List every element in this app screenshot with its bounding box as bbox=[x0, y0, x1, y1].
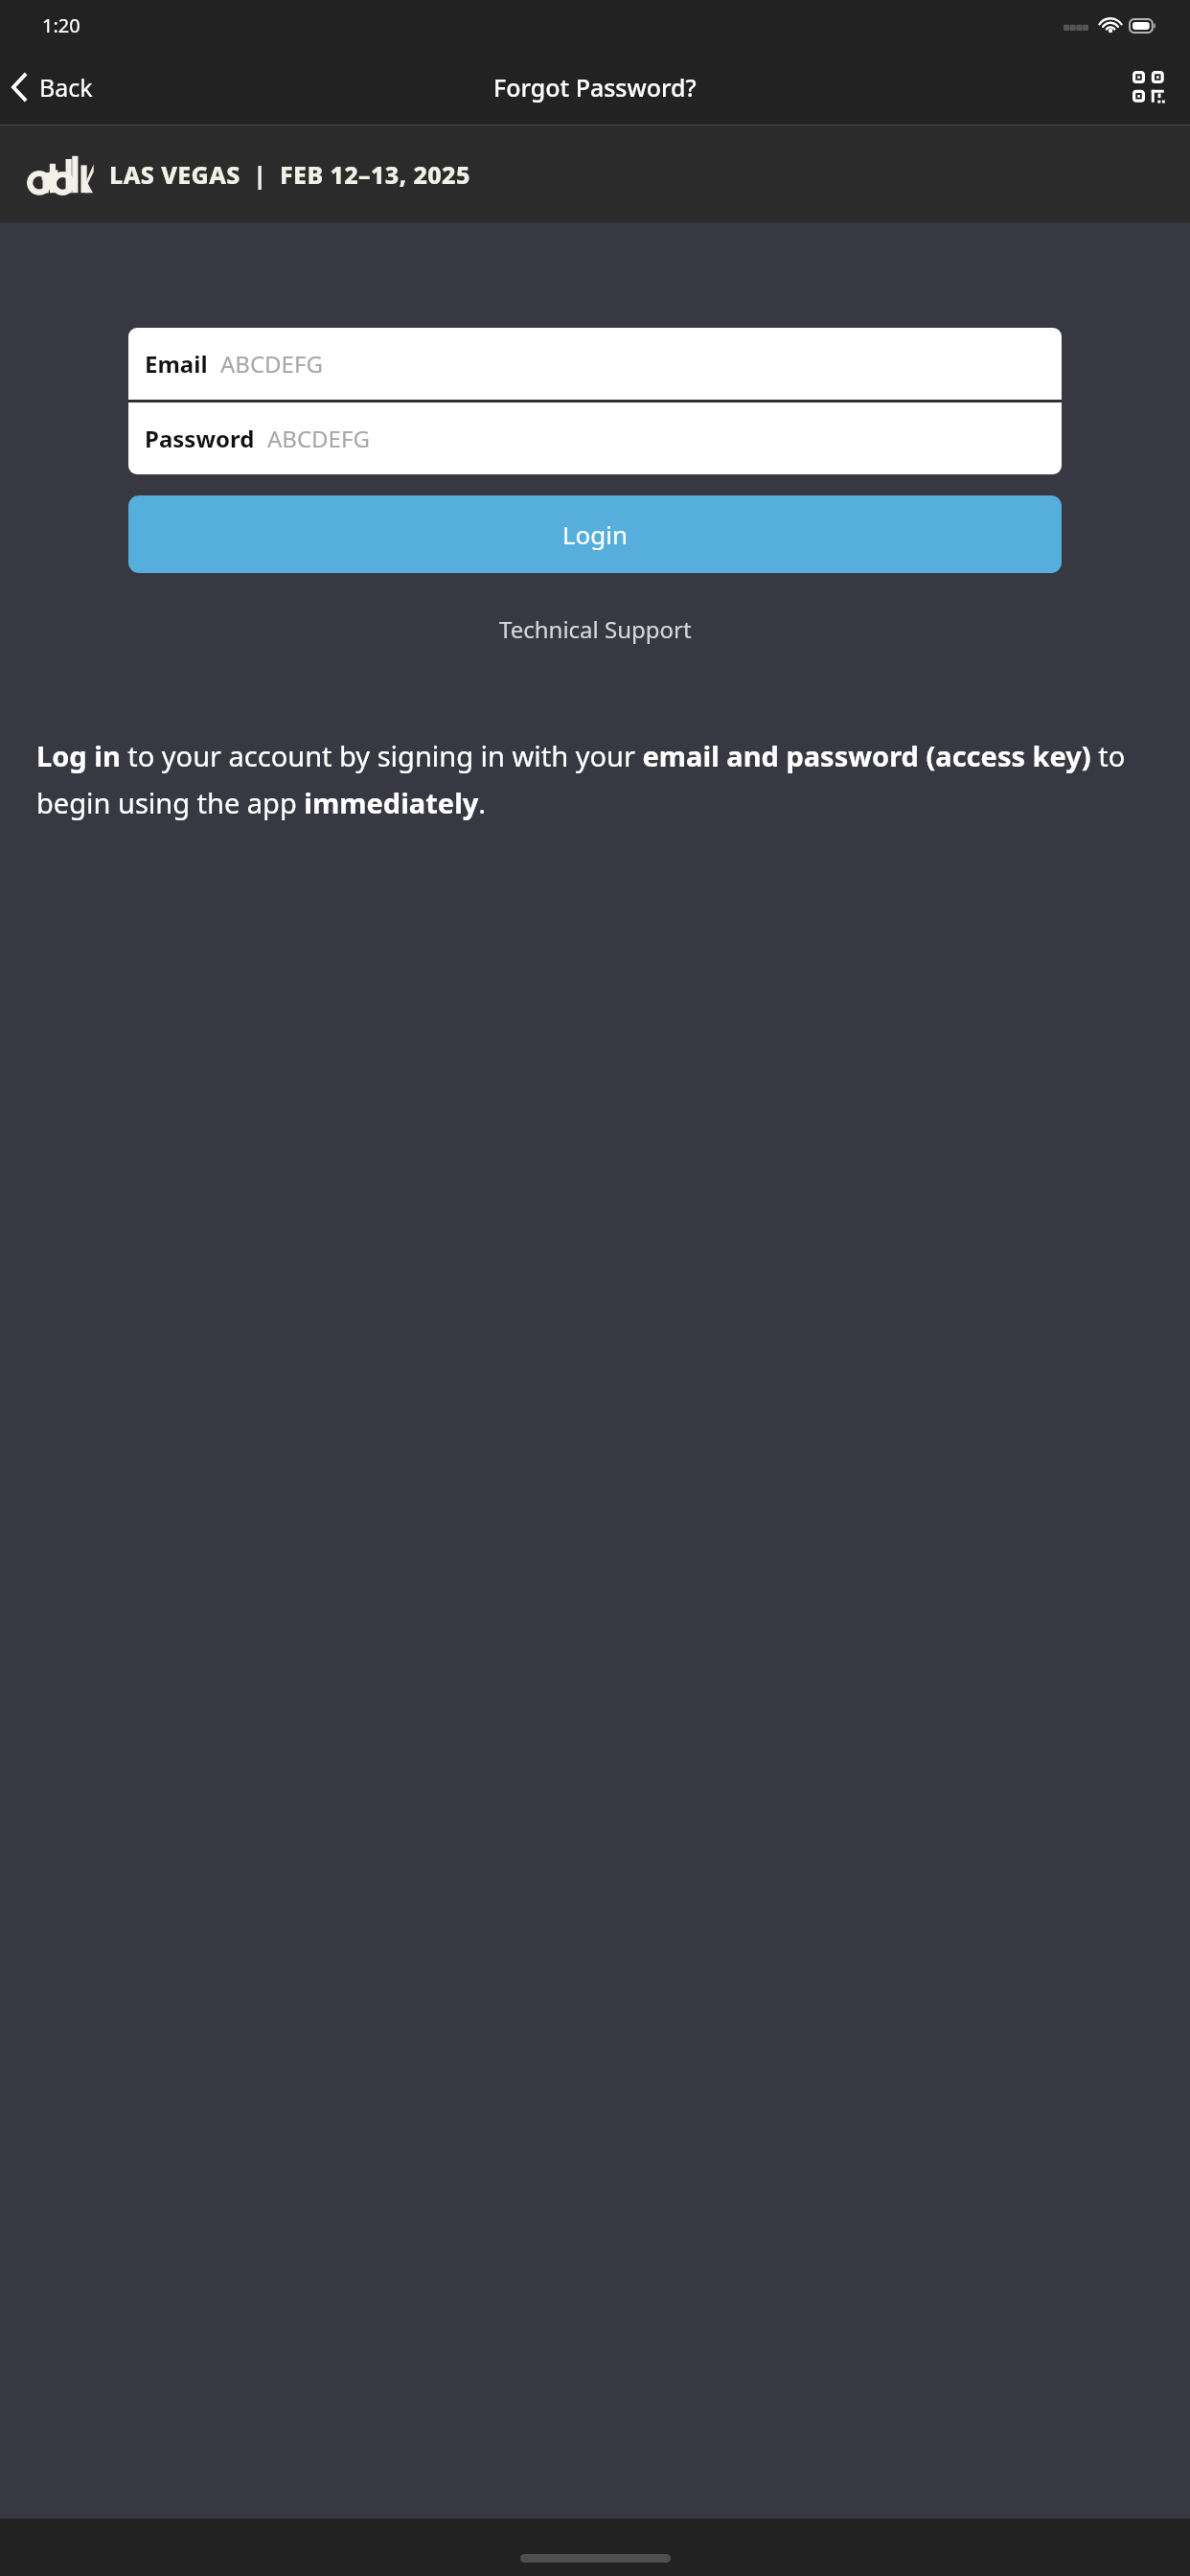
button[interactable]: Technical Support bbox=[486, 608, 705, 651]
button[interactable]: Email bbox=[128, 328, 1062, 400]
staticText: 1:20 bbox=[42, 12, 80, 38]
staticText: Technical Support bbox=[499, 613, 692, 645]
button[interactable]: Login bbox=[128, 495, 1062, 573]
button[interactable]: Scan QR code bbox=[1125, 63, 1173, 111]
staticText: Forgot Password? bbox=[493, 71, 697, 103]
staticText: Password bbox=[145, 423, 255, 454]
staticText: Log in to your account by signing in wit… bbox=[36, 737, 1161, 822]
button[interactable]: Password bbox=[128, 402, 1062, 474]
staticText: LAS VEGAS | FEB 12–13, 2025 bbox=[109, 158, 470, 191]
button[interactable]: Back bbox=[0, 63, 104, 111]
staticText: Email bbox=[145, 348, 208, 379]
staticText: ABCDEFG bbox=[267, 423, 370, 454]
staticText: ABCDEFG bbox=[220, 348, 323, 379]
staticText: Login bbox=[562, 517, 629, 551]
staticText: Back bbox=[39, 71, 93, 103]
